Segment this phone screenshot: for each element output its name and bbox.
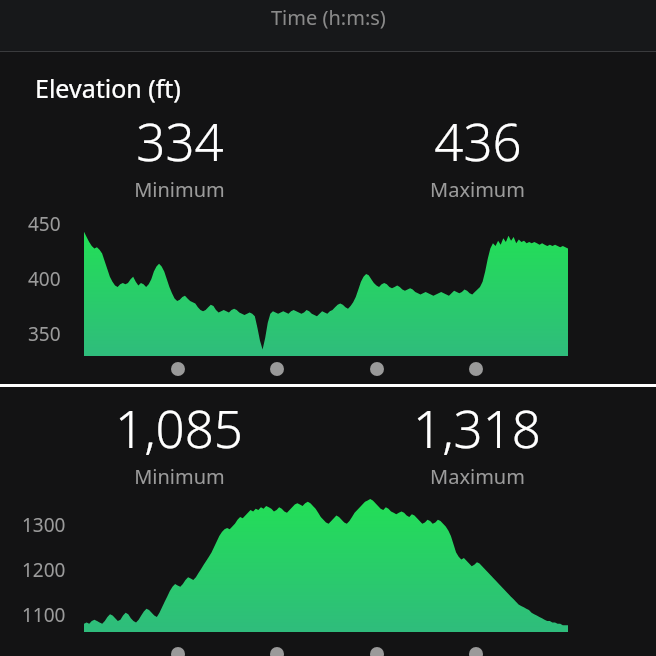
staticText: Minimum <box>134 176 225 203</box>
staticText: 1,318 <box>413 393 541 462</box>
staticText: 436 <box>434 106 522 175</box>
staticText: Maximum <box>430 176 525 203</box>
staticText: 1200 <box>22 557 66 583</box>
staticText: Elevation (ft) <box>35 71 181 105</box>
staticText: 334 <box>136 106 224 175</box>
staticText: 1,085 <box>115 393 243 462</box>
staticText: 350 <box>28 321 61 347</box>
button[interactable]: 1,318 <box>0 393 656 490</box>
staticText: 450 <box>28 211 61 237</box>
button[interactable]: 436 <box>0 106 656 203</box>
staticText: 1300 <box>22 512 66 538</box>
staticText: Maximum <box>430 463 525 490</box>
button[interactable]: 334 <box>0 106 358 203</box>
staticText: 400 <box>28 266 61 292</box>
staticText: 1100 <box>22 602 66 628</box>
staticText: Minimum <box>134 463 225 490</box>
staticText: Time (h:m:s) <box>271 4 386 31</box>
button[interactable]: 1,085 <box>0 393 358 490</box>
